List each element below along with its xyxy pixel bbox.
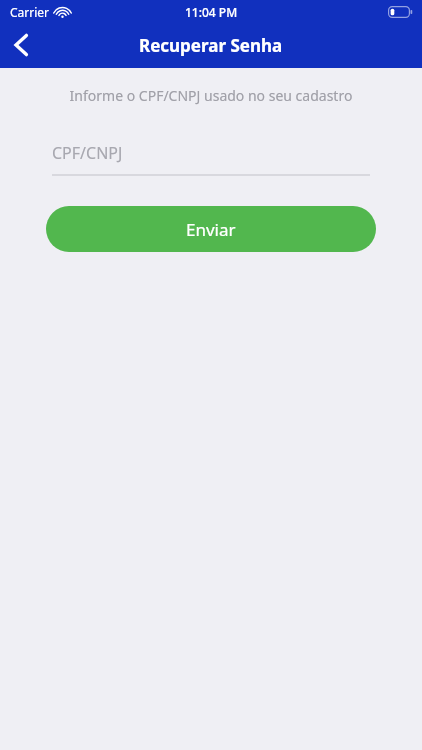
staticText: 11:04 PM: [185, 4, 238, 20]
staticText: Informe o CPF/CNPJ usado no seu cadastro: [24, 86, 398, 105]
button[interactable]: Enviar: [46, 206, 376, 252]
staticText: Recuperar Senha: [139, 34, 283, 57]
staticText: CPF/CNPJ: [52, 142, 123, 164]
staticText: Enviar: [186, 218, 236, 241]
button[interactable]: CPF/CNPJ: [52, 138, 370, 176]
staticText: Carrier: [10, 4, 50, 20]
button[interactable]: Voltar: [0, 23, 44, 67]
